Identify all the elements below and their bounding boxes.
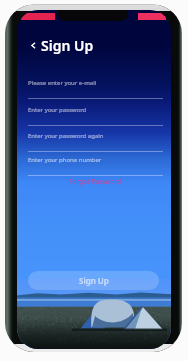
staticText: Sign Up	[79, 275, 109, 286]
button[interactable]: Please enter your e-mail	[28, 78, 163, 99]
staticText: Enter your phone number	[28, 156, 102, 164]
staticText: Enter your password	[28, 106, 87, 114]
button[interactable]: Sign Up	[28, 271, 159, 290]
other: Back	[29, 41, 38, 50]
button[interactable]: Enter your password again	[28, 131, 163, 152]
staticText: Enter your password again	[28, 132, 104, 140]
button[interactable]: Enter your password	[28, 105, 163, 126]
staticText: Please enter your e-mail	[28, 79, 97, 87]
button[interactable]: Back	[29, 36, 94, 55]
button[interactable]: Forgot Password	[69, 177, 122, 186]
staticText: Sign Up	[41, 36, 94, 55]
button[interactable]: Enter your phone number	[28, 155, 163, 176]
